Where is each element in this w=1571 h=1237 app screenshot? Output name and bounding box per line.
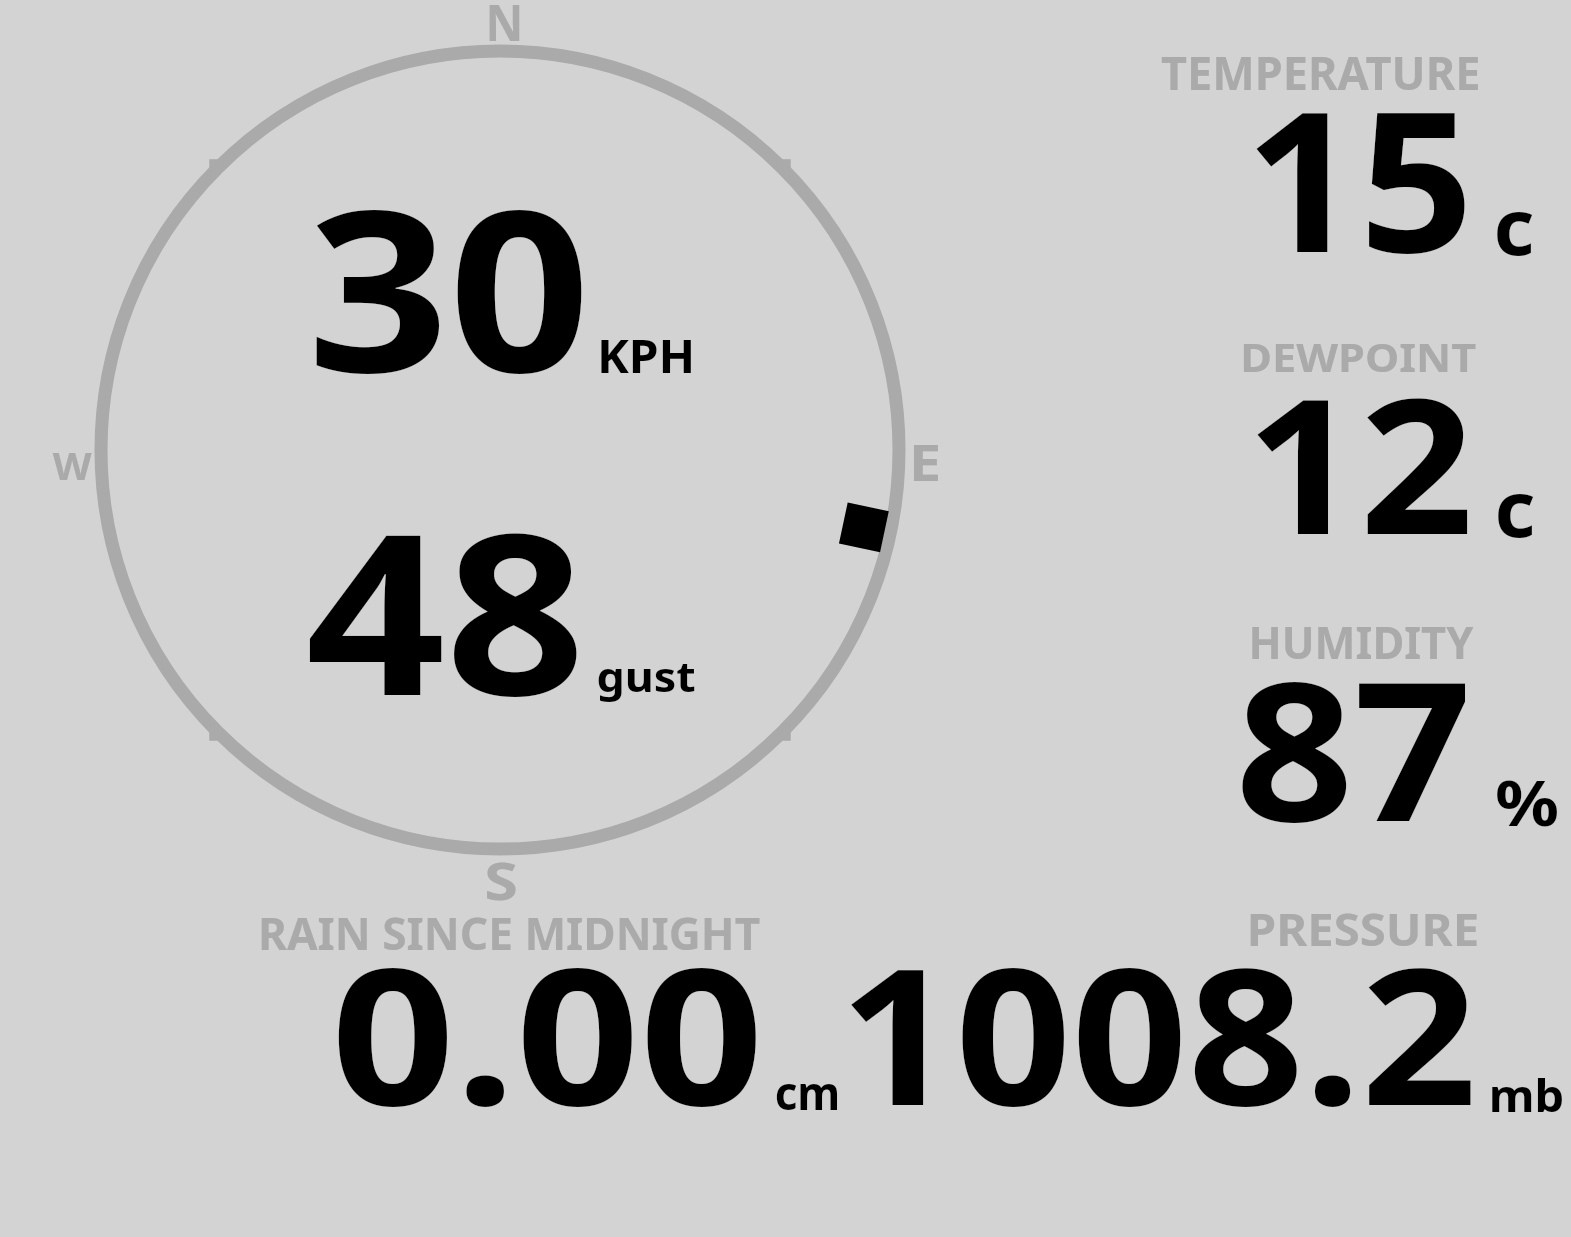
- button[interactable]: PRESSURE: [1247, 899, 1480, 959]
- button[interactable]: DEWPOINT: [1240, 329, 1477, 384]
- button[interactable]: 15: [1245, 44, 1474, 309]
- button[interactable]: 1008.2: [839, 903, 1478, 1160]
- button[interactable]: cm: [775, 1061, 840, 1124]
- button[interactable]: c: [1494, 454, 1535, 559]
- button[interactable]: mb: [1489, 1064, 1564, 1126]
- button[interactable]: 12: [1246, 335, 1474, 589]
- button[interactable]: W: [53, 439, 92, 491]
- button[interactable]: 0.00: [331, 903, 764, 1160]
- button[interactable]: RAIN SINCE MIDNIGHT: [258, 903, 761, 963]
- button[interactable]: HUMIDITY: [1248, 612, 1474, 672]
- button[interactable]: KPH: [597, 324, 696, 387]
- button[interactable]: c: [1493, 172, 1534, 277]
- button[interactable]: gust: [596, 648, 697, 705]
- button[interactable]: 30: [307, 133, 591, 437]
- button[interactable]: %: [1495, 759, 1560, 844]
- button[interactable]: Wind direction compass: [0, 0, 1571, 1237]
- button[interactable]: TEMPERATURE: [1161, 41, 1481, 104]
- button[interactable]: S: [484, 845, 519, 915]
- button[interactable]: N: [485, 0, 523, 55]
- button[interactable]: 48: [306, 457, 586, 761]
- button[interactable]: E: [909, 428, 941, 496]
- button[interactable]: 87: [1235, 616, 1472, 877]
